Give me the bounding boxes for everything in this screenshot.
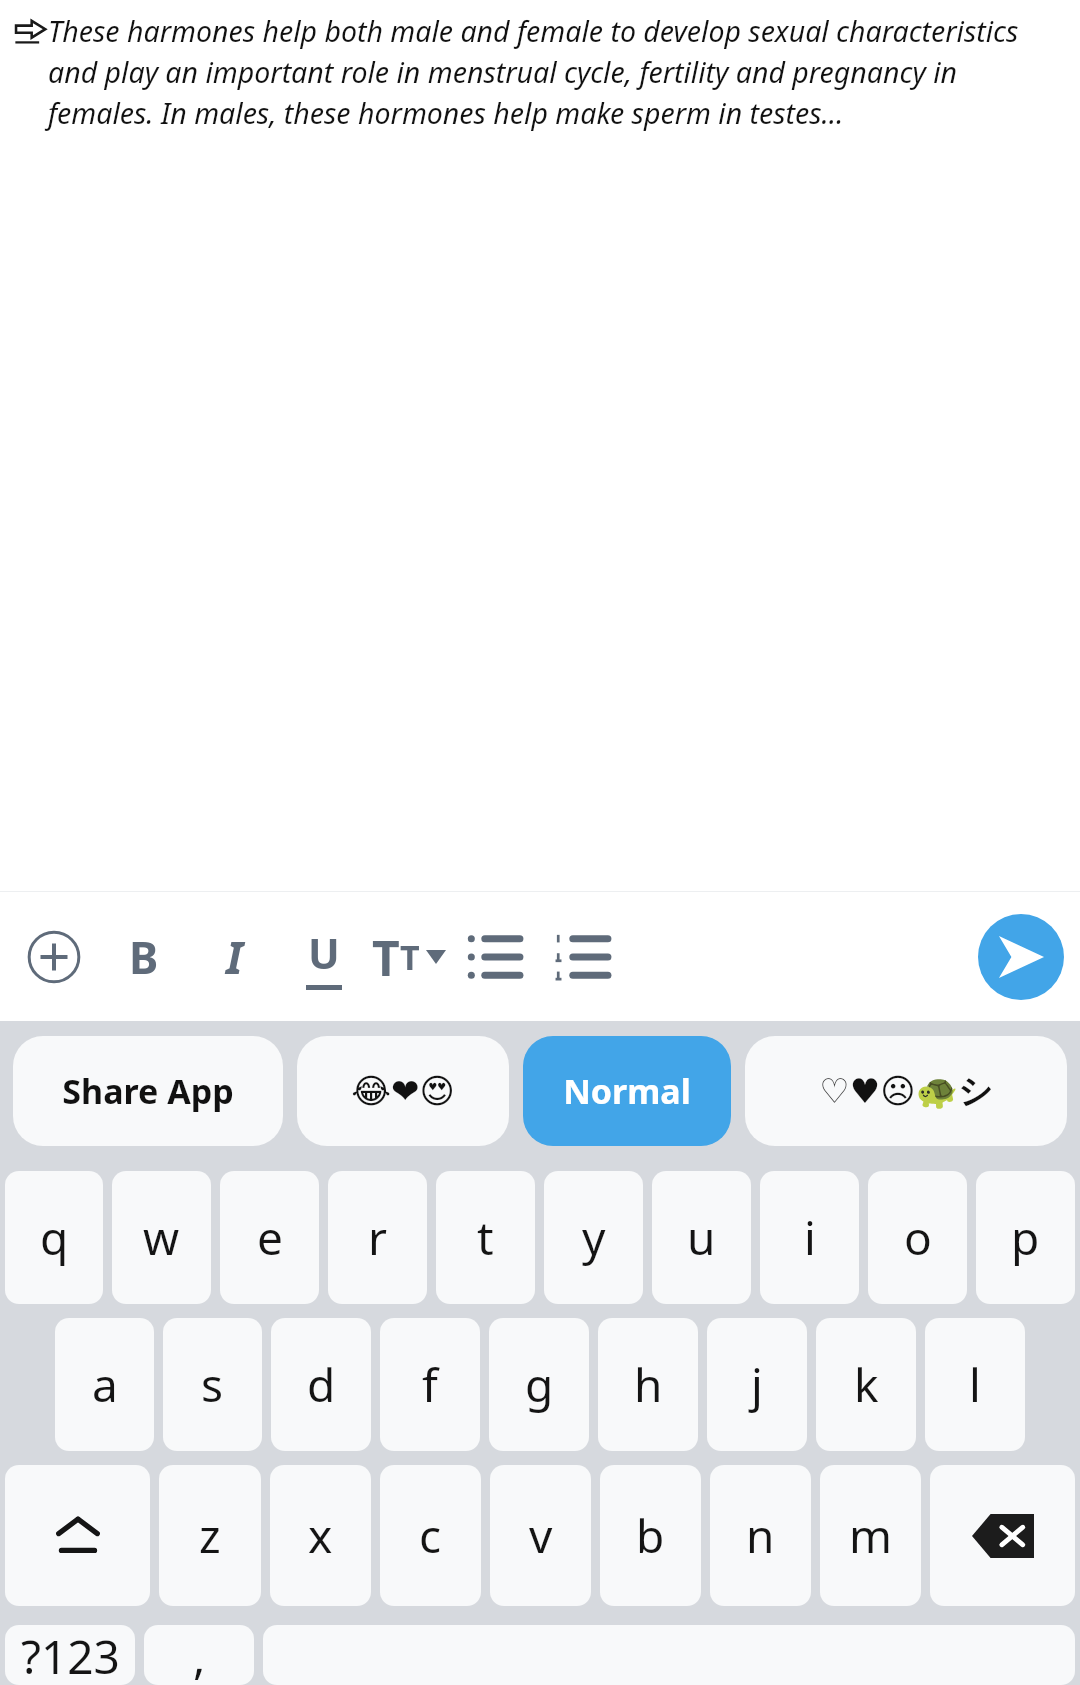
button[interactable]: r bbox=[328, 1171, 427, 1304]
staticText: s bbox=[201, 1353, 224, 1416]
staticText: u bbox=[687, 1206, 716, 1269]
staticText: Share App bbox=[62, 1068, 234, 1114]
staticText: o bbox=[904, 1206, 932, 1269]
button[interactable]: t bbox=[436, 1171, 535, 1304]
button[interactable]: m bbox=[820, 1465, 921, 1606]
staticText: q bbox=[40, 1206, 69, 1269]
button[interactable]: B bbox=[106, 919, 182, 995]
staticText: f bbox=[422, 1353, 438, 1416]
staticText: ?123 bbox=[21, 1625, 120, 1685]
staticText: m bbox=[849, 1504, 893, 1567]
button[interactable]: I bbox=[196, 919, 272, 995]
staticText: p bbox=[1011, 1206, 1040, 1269]
staticText: I bbox=[226, 927, 243, 987]
button[interactable]: Backspace bbox=[930, 1465, 1075, 1606]
staticText: , bbox=[193, 1625, 206, 1685]
button[interactable]: c bbox=[380, 1465, 481, 1606]
staticText: l bbox=[969, 1353, 981, 1416]
staticText: These harmones help both male and female… bbox=[48, 12, 1060, 133]
staticText: 😂❤️😍 bbox=[351, 1071, 455, 1111]
button[interactable]: e bbox=[220, 1171, 319, 1304]
button[interactable]: ?123 bbox=[5, 1625, 135, 1685]
button[interactable]: x bbox=[270, 1465, 371, 1606]
staticText: B bbox=[129, 927, 159, 987]
staticText: j bbox=[751, 1353, 763, 1416]
button[interactable]: Send bbox=[978, 914, 1064, 1000]
staticText: x bbox=[308, 1504, 333, 1567]
button[interactable]: d bbox=[271, 1318, 371, 1451]
button[interactable]: w bbox=[112, 1171, 211, 1304]
button[interactable]: , bbox=[144, 1625, 254, 1685]
staticText: U bbox=[308, 924, 340, 981]
button[interactable]: b bbox=[600, 1465, 701, 1606]
button[interactable]: Numbered list bbox=[544, 919, 620, 995]
staticText: e bbox=[257, 1206, 283, 1269]
button[interactable]: Insert bbox=[16, 919, 92, 995]
staticText: n bbox=[746, 1504, 775, 1567]
button[interactable]: p bbox=[976, 1171, 1075, 1304]
staticText: ♡♥☹🐢シ bbox=[819, 1070, 993, 1113]
button[interactable]: s bbox=[163, 1318, 262, 1451]
staticText: t bbox=[477, 1206, 494, 1269]
staticText: Normal bbox=[563, 1068, 691, 1114]
button[interactable]: z bbox=[159, 1465, 261, 1606]
button[interactable]: u bbox=[652, 1171, 751, 1304]
staticText: v bbox=[529, 1504, 553, 1567]
button[interactable]: n bbox=[710, 1465, 811, 1606]
button[interactable]: y bbox=[544, 1171, 643, 1304]
button[interactable]: Bulleted list bbox=[456, 919, 532, 995]
staticText: y bbox=[582, 1206, 606, 1269]
staticText: k bbox=[854, 1353, 879, 1416]
button[interactable]: Share App bbox=[13, 1036, 283, 1146]
staticText: w bbox=[143, 1206, 180, 1269]
staticText: T bbox=[400, 934, 420, 980]
button[interactable]: o bbox=[868, 1171, 967, 1304]
button[interactable]: i bbox=[760, 1171, 859, 1304]
staticText: T bbox=[372, 925, 400, 990]
button[interactable]: Normal bbox=[523, 1036, 731, 1146]
staticText: a bbox=[92, 1353, 118, 1416]
button[interactable]: Underline bbox=[286, 919, 362, 995]
button[interactable]: f bbox=[380, 1318, 480, 1451]
button[interactable]: q bbox=[5, 1171, 103, 1304]
button[interactable]: v bbox=[490, 1465, 591, 1606]
staticText: z bbox=[199, 1504, 221, 1567]
button[interactable]: 😂❤️😍 bbox=[297, 1036, 509, 1146]
button[interactable]: k bbox=[816, 1318, 916, 1451]
staticText: b bbox=[636, 1504, 665, 1567]
button[interactable]: ♡♥☹🐢シ bbox=[745, 1036, 1067, 1146]
staticText: d bbox=[307, 1353, 336, 1416]
staticText: i bbox=[804, 1206, 816, 1269]
button[interactable]: h bbox=[598, 1318, 698, 1451]
staticText: g bbox=[525, 1353, 554, 1416]
staticText: c bbox=[419, 1504, 442, 1567]
button[interactable]: a bbox=[55, 1318, 154, 1451]
button[interactable]: j bbox=[707, 1318, 807, 1451]
button[interactable]: Font size bbox=[372, 919, 446, 995]
button[interactable]: g bbox=[489, 1318, 589, 1451]
button[interactable]: Shift bbox=[5, 1465, 150, 1606]
staticText: r bbox=[368, 1206, 387, 1269]
staticText: h bbox=[634, 1353, 663, 1416]
button[interactable]: l bbox=[925, 1318, 1025, 1451]
